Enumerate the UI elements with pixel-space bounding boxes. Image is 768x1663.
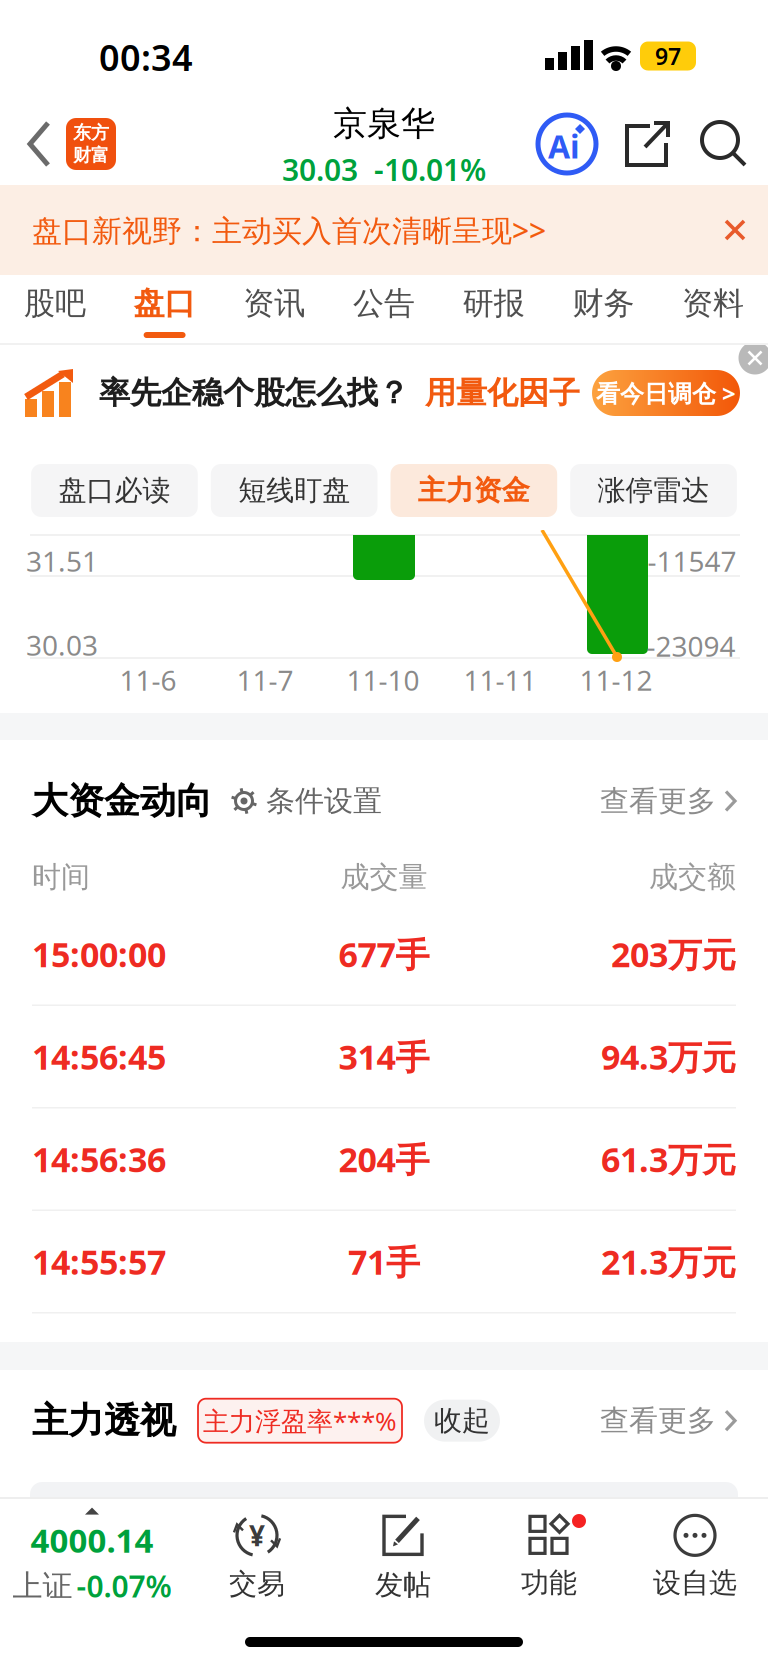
- button[interactable]: 研报: [439, 284, 548, 338]
- staticText: -11547: [647, 542, 736, 580]
- staticText: 203万元: [611, 931, 736, 977]
- staticText: 204手: [338, 1136, 429, 1182]
- staticText: 发帖: [375, 1567, 431, 1603]
- staticText: 11-11: [463, 661, 536, 699]
- staticText: 交易: [229, 1566, 285, 1602]
- button[interactable]: 上证指数: [0, 1508, 184, 1606]
- staticText: 盘口: [134, 284, 196, 323]
- button[interactable]: 资料: [658, 284, 768, 338]
- staticText: 上证: [12, 1567, 72, 1605]
- button[interactable]: Close banner: [714, 209, 756, 251]
- staticText: ¥: [249, 1516, 265, 1554]
- button[interactable]: Share: [598, 118, 674, 170]
- staticText: 97: [655, 40, 681, 72]
- staticText: 成交额: [649, 859, 736, 895]
- button[interactable]: Back: [0, 119, 52, 169]
- staticText: 成交量: [340, 859, 427, 895]
- staticText: 看今日调仓 >: [596, 377, 736, 409]
- staticText: 314手: [338, 1033, 429, 1080]
- staticText: 大资金动向: [32, 778, 212, 824]
- button[interactable]: Search: [674, 119, 768, 169]
- button[interactable]: 涨停雷达: [570, 464, 737, 517]
- button[interactable]: 短线盯盘: [211, 464, 377, 517]
- button[interactable]: 查看更多: [600, 783, 738, 819]
- staticText: 查看更多: [600, 1402, 716, 1439]
- staticText: 收起: [434, 1403, 490, 1438]
- button[interactable]: 收起: [424, 1400, 500, 1442]
- staticText: 条件设置: [266, 783, 382, 819]
- staticText: 用量化因子: [425, 373, 580, 413]
- staticText: 30.03: [282, 149, 358, 190]
- button[interactable]: 财务: [548, 284, 658, 338]
- staticText: 11-7: [236, 661, 293, 699]
- staticText: 14:56:36: [32, 1136, 166, 1182]
- staticText: 14:55:57: [32, 1238, 166, 1285]
- staticText: 查看更多: [600, 783, 716, 819]
- staticText: 00:34: [99, 32, 193, 81]
- staticText: 短线盯盘: [238, 473, 350, 508]
- staticText: 京泉华: [333, 102, 435, 145]
- staticText: 14:56:45: [32, 1033, 166, 1080]
- button[interactable]: 查看更多: [600, 1402, 738, 1439]
- staticText: 资料: [682, 284, 744, 323]
- staticText: 30.03: [26, 626, 98, 664]
- button[interactable]: 条件设置: [212, 783, 382, 819]
- staticText: 主力透视: [32, 1398, 176, 1443]
- staticText: 主力浮盈率***%: [203, 1403, 397, 1438]
- button[interactable]: Close ad: [738, 341, 768, 374]
- staticText: 677手: [338, 931, 429, 977]
- staticText: -0.07%: [76, 1565, 171, 1606]
- button[interactable]: Ai 助手: [536, 113, 598, 175]
- button[interactable]: 看今日调仓 >: [592, 370, 740, 416]
- staticText: 61.3万元: [601, 1136, 736, 1182]
- staticText: 主力资金: [418, 473, 530, 508]
- button[interactable]: 设自选: [622, 1502, 768, 1612]
- button[interactable]: 功能: [476, 1502, 622, 1612]
- button[interactable]: 发帖: [330, 1502, 476, 1612]
- staticText: 4000.14: [30, 1518, 153, 1562]
- staticText: -10.01%: [374, 149, 486, 190]
- staticText: 设自选: [653, 1565, 737, 1601]
- button[interactable]: 主力资金: [390, 464, 557, 517]
- staticText: 财务: [572, 284, 634, 323]
- staticText: 涨停雷达: [597, 473, 709, 508]
- button[interactable]: 股吧: [0, 284, 110, 338]
- staticText: 率先企稳个股怎么找？: [99, 373, 409, 413]
- staticText: 公告: [353, 284, 415, 323]
- staticText: 财富: [73, 144, 109, 167]
- staticText: 21.3万元: [601, 1238, 736, 1285]
- staticText: 94.3万元: [601, 1033, 736, 1080]
- button[interactable]: 资讯: [219, 284, 329, 338]
- staticText: 时间: [32, 859, 90, 895]
- staticText: -23094: [646, 627, 735, 665]
- button[interactable]: 东方财富: [52, 118, 116, 170]
- staticText: 15:00:00: [32, 931, 166, 977]
- staticText: 71手: [348, 1238, 420, 1285]
- staticText: 盘口必读: [58, 473, 170, 508]
- staticText: 盘口新视野：主动买入首次清晰呈现>>: [32, 210, 546, 250]
- staticText: 11-10: [346, 661, 419, 699]
- staticText: 31.51: [26, 542, 98, 580]
- button[interactable]: 盘口: [110, 284, 219, 338]
- staticText: 股吧: [24, 284, 86, 323]
- staticText: 资讯: [243, 284, 305, 323]
- staticText: 11-6: [119, 661, 176, 699]
- staticText: 东方: [73, 121, 109, 144]
- button[interactable]: 盘口必读: [31, 464, 198, 517]
- staticText: 11-12: [579, 661, 652, 699]
- button[interactable]: ¥: [184, 1502, 330, 1612]
- staticText: Ai: [548, 124, 580, 168]
- button[interactable]: 公告: [329, 284, 439, 338]
- staticText: 研报: [463, 284, 525, 323]
- staticText: 功能: [521, 1565, 577, 1601]
